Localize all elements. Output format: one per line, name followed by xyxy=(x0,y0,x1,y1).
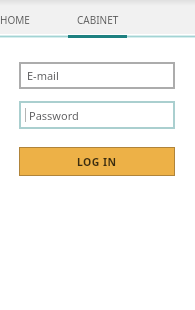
button[interactable]: LOG IN xyxy=(19,147,175,176)
staticText: E-mail xyxy=(27,68,59,83)
button[interactable]: E-mail xyxy=(19,62,175,89)
staticText: HOME xyxy=(0,13,30,27)
staticText: LOG IN xyxy=(77,155,117,169)
button[interactable]: HOME xyxy=(0,0,69,34)
button[interactable]: Password xyxy=(19,101,175,129)
button[interactable]: CABINET xyxy=(68,0,127,34)
staticText: CABINET xyxy=(77,13,119,27)
staticText: Password xyxy=(29,108,79,123)
